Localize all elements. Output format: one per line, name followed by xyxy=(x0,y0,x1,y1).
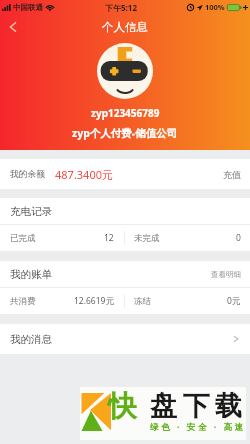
staticText: 100% xyxy=(205,2,225,12)
button[interactable]: 我的消息 xyxy=(0,324,250,354)
staticText: 0元 xyxy=(227,295,241,307)
staticText: 12 xyxy=(104,232,114,244)
staticText: 个人信息 xyxy=(102,20,148,34)
staticText: 快 xyxy=(108,388,137,425)
button[interactable]: 冻结 xyxy=(125,288,250,314)
staticText: 冻结 xyxy=(134,296,151,307)
staticText: 12.6619元 xyxy=(74,295,114,307)
button[interactable]: Back xyxy=(0,16,26,38)
staticText: 充电记录 xyxy=(10,205,52,218)
staticText: zyp123456789 xyxy=(91,106,160,120)
staticText: 绿色 · 安全 · 高速 xyxy=(150,421,246,433)
staticText: 我的账单 xyxy=(10,268,52,281)
button[interactable]: 未完成 xyxy=(125,225,250,251)
staticText: 0 xyxy=(236,232,241,244)
staticText: 中国联通 xyxy=(13,3,43,12)
staticText: 下午5:12 xyxy=(105,2,137,13)
staticText: 487.3400元 xyxy=(55,167,113,182)
staticText: 共消费 xyxy=(10,296,36,307)
staticText: 我的余额 xyxy=(10,169,46,180)
staticText: 查看明细 xyxy=(211,270,241,279)
staticText: 已完成 xyxy=(10,233,36,244)
button[interactable]: 共消费 xyxy=(0,288,124,314)
staticText: 盘下载 xyxy=(150,389,248,423)
staticText: 充值 xyxy=(223,169,241,180)
button[interactable]: 我的余额 xyxy=(0,159,250,189)
staticText: zyp个人付费-储值公司 xyxy=(72,126,178,140)
button[interactable]: 已完成 xyxy=(0,225,124,251)
button[interactable]: 我的账单 xyxy=(0,261,250,287)
staticText: 我的消息 xyxy=(10,333,52,346)
staticText: 未完成 xyxy=(134,233,160,244)
